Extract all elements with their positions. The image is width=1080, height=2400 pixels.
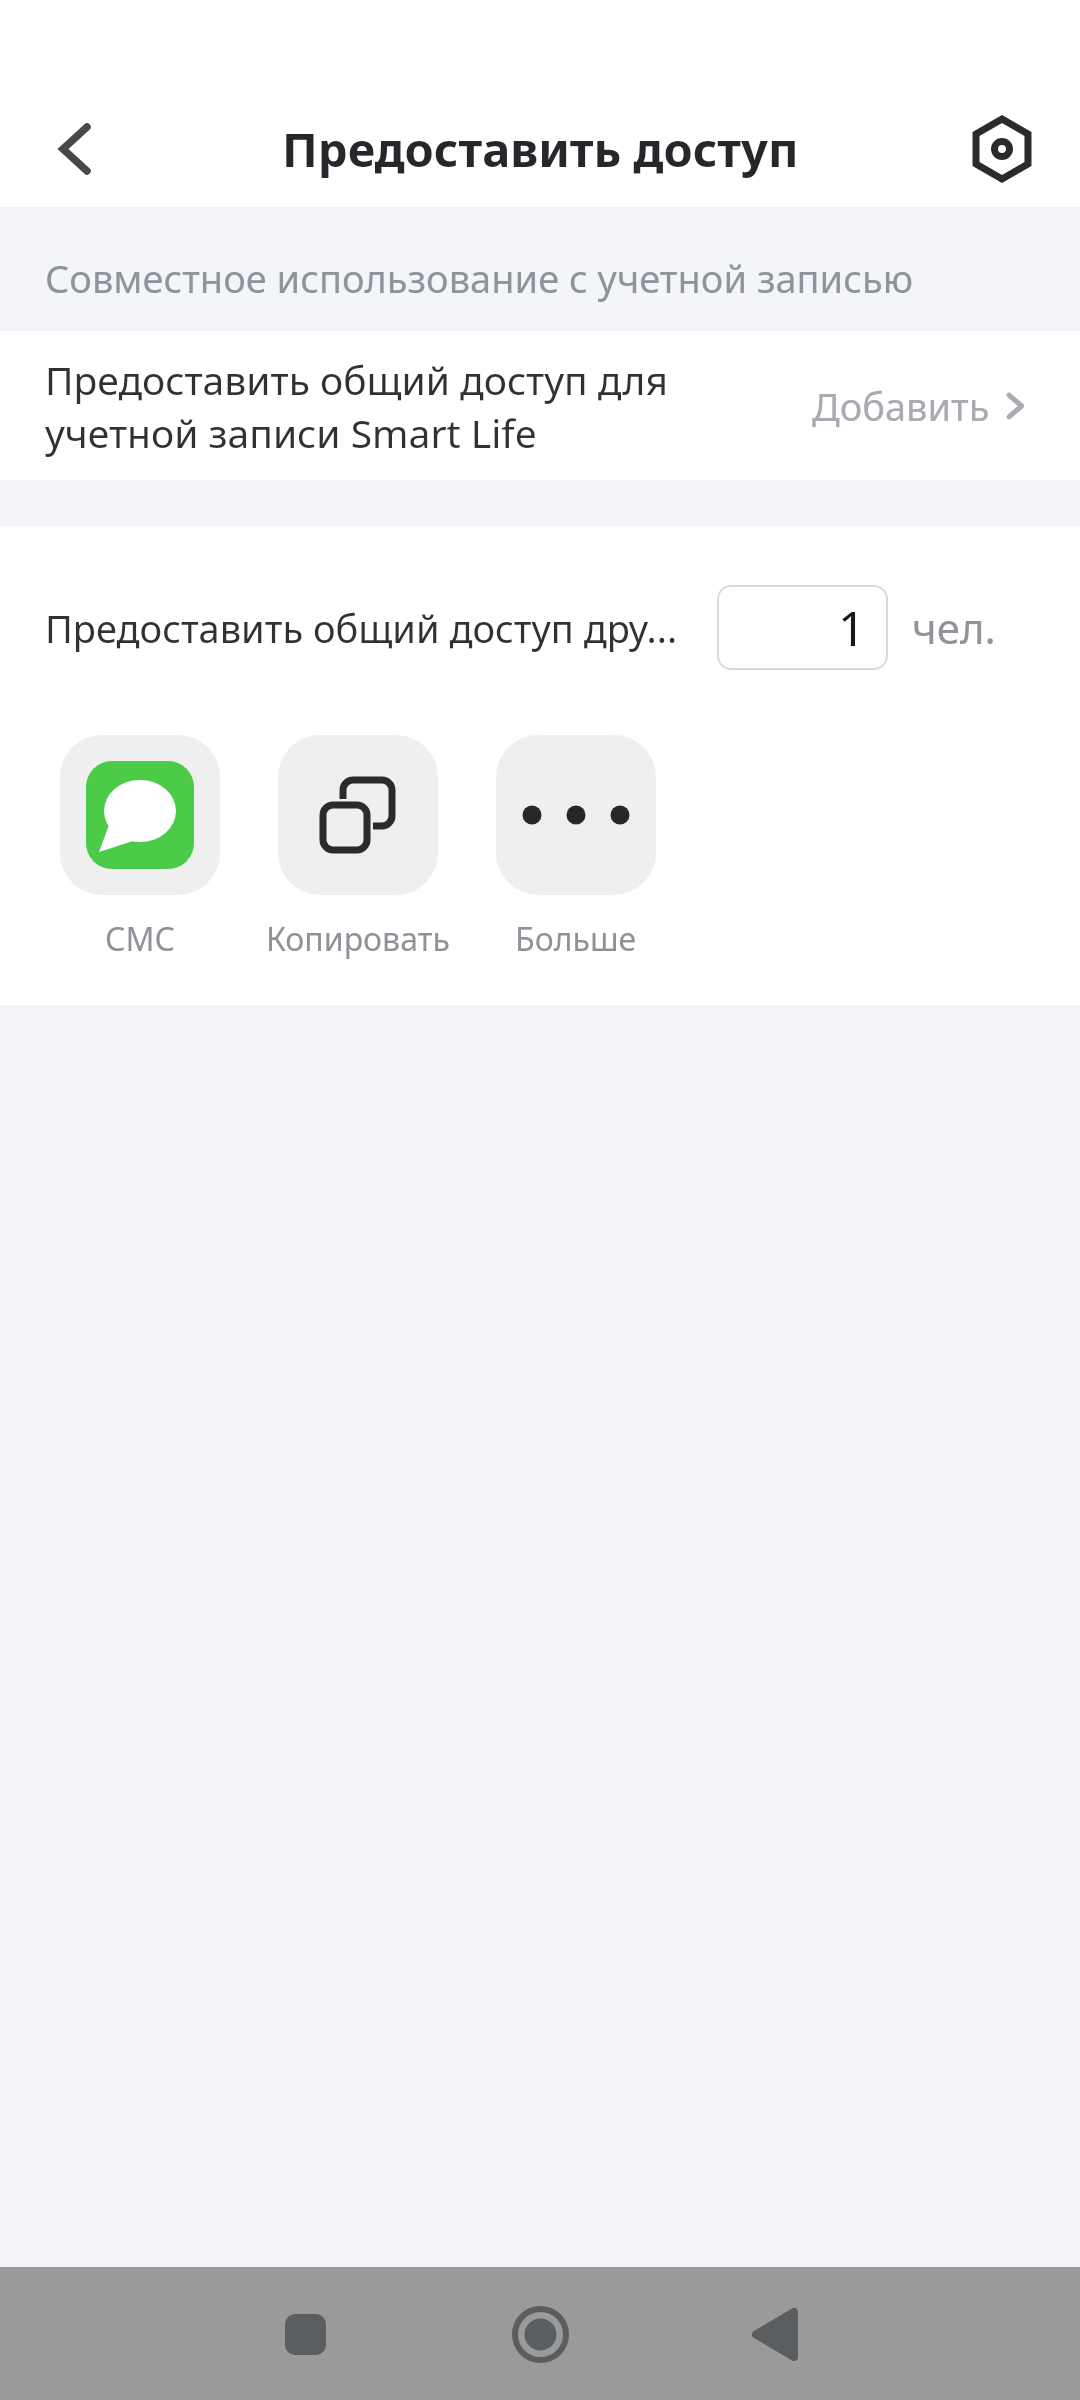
button[interactable]: Предоставить общий доступ для [0,331,1080,480]
staticText: Больше [515,917,637,961]
staticText: Предоставить общий доступ дру... [45,602,717,654]
button[interactable] [496,735,656,895]
staticText: Добавить [812,380,990,432]
button[interactable] [255,2284,355,2384]
button[interactable] [725,2284,825,2384]
staticText: Совместное использование с учетной запис… [45,252,913,304]
staticText: Предоставить доступ [282,117,799,181]
button[interactable] [967,114,1037,184]
staticText: Копировать [266,917,450,961]
staticText: чел. [912,599,996,656]
staticText: СМС [105,917,175,961]
button[interactable] [278,735,438,895]
button[interactable] [490,2284,590,2384]
button[interactable] [60,735,220,895]
staticText: Предоставить общий доступ для [45,353,668,406]
button[interactable] [40,114,110,184]
button[interactable]: 1 [717,585,888,670]
staticText: учетной записи Smart Life [45,406,537,459]
staticText: 1 [838,595,866,660]
